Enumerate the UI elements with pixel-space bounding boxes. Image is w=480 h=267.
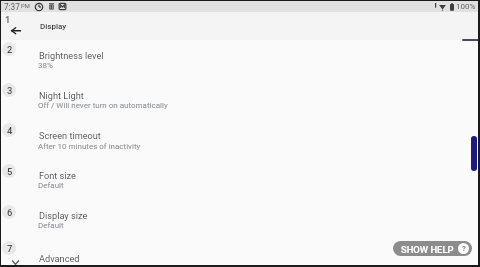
button[interactable]: Advanced	[0, 239, 480, 265]
staticText: PM	[21, 3, 30, 10]
button[interactable]: Brightness level	[0, 39, 480, 79]
staticText: Night Light	[39, 90, 84, 101]
staticText: 6	[7, 207, 13, 218]
staticText: 7	[7, 243, 13, 254]
button[interactable]: Screen timeout	[0, 119, 480, 159]
staticText: Screen timeout	[39, 130, 101, 141]
staticText: 5	[7, 166, 13, 177]
button[interactable]: Night Light	[0, 79, 480, 119]
staticText: 38%	[38, 61, 53, 70]
staticText: SHOW HELP	[401, 244, 454, 255]
staticText: Off / Will never turn on automatically	[38, 101, 168, 110]
button[interactable]: Font size	[0, 159, 480, 199]
staticText: Font size	[39, 170, 76, 181]
staticText: 3	[7, 85, 13, 96]
staticText: Display	[40, 22, 67, 31]
staticText: Advanced	[39, 253, 80, 264]
staticText: Default	[38, 221, 64, 230]
staticText: Brightness level	[39, 50, 104, 61]
button[interactable]: Display size	[0, 199, 480, 239]
staticText: 1	[5, 14, 11, 25]
button[interactable]: SHOW HELP	[393, 241, 472, 256]
staticText: After 10 minutes of inactivity	[38, 142, 141, 151]
staticText: Default	[38, 181, 64, 190]
staticText: ?	[462, 244, 466, 253]
staticText: 4	[7, 125, 13, 136]
staticText: 7:37	[4, 2, 20, 12]
staticText: 2	[7, 44, 13, 55]
staticText: Display size	[39, 210, 88, 221]
staticText: 100%	[456, 2, 476, 11]
button[interactable]: Navigate up	[5, 20, 26, 38]
